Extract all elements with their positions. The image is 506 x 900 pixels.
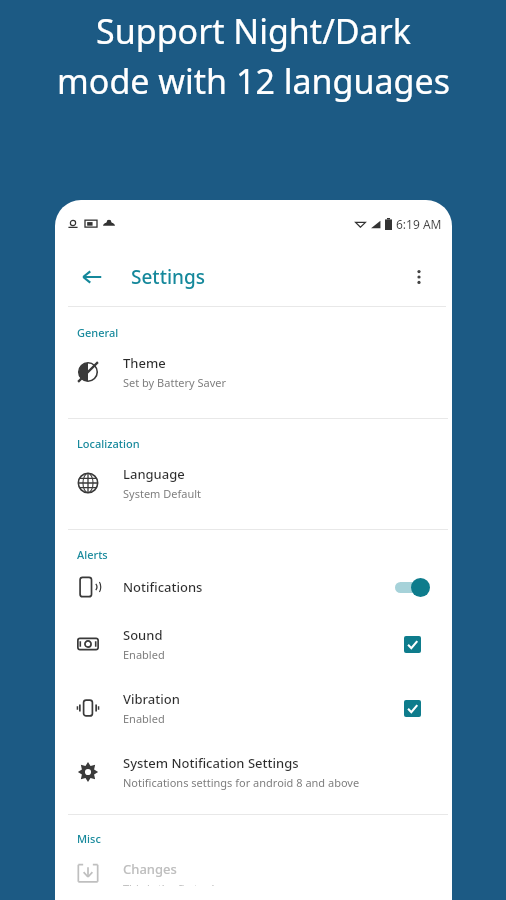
staticText: Theme — [123, 354, 166, 372]
button[interactable]: Back — [77, 262, 107, 292]
staticText: Support Night/Dark — [96, 8, 411, 54]
staticText: Misc — [77, 831, 101, 846]
staticText: Enabled — [123, 711, 165, 726]
button[interactable]: Vibration — [55, 676, 452, 740]
staticText: Settings — [131, 264, 205, 290]
button[interactable]: Notifications — [55, 562, 452, 612]
staticText: System Default — [123, 486, 202, 501]
button[interactable]: Checkbox — [401, 697, 423, 719]
button[interactable]: More options — [404, 262, 434, 292]
button[interactable]: System Notification Settings — [55, 740, 452, 804]
staticText: Set by Battery Saver — [123, 375, 227, 390]
button[interactable]: Theme — [55, 340, 452, 404]
button[interactable]: Notifications toggle — [392, 576, 432, 598]
button[interactable]: Sound — [55, 612, 452, 676]
staticText: Language — [123, 465, 185, 483]
staticText: 6:19 AM — [396, 216, 442, 232]
staticText: Vibration — [123, 690, 180, 708]
button[interactable]: Changes — [55, 846, 452, 900]
staticText: Alerts — [77, 547, 108, 562]
button[interactable]: Checkbox — [401, 633, 423, 655]
staticText: Changes — [123, 860, 177, 878]
staticText: Notifications — [123, 578, 203, 596]
button[interactable]: Language — [55, 451, 452, 515]
staticText: Localization — [77, 436, 140, 451]
staticText: Notifications settings for android 8 and… — [123, 775, 360, 790]
staticText: Sound — [123, 626, 163, 644]
staticText: Enabled — [123, 647, 165, 662]
staticText: mode with 12 languages — [57, 58, 450, 104]
staticText: System Notification Settings — [123, 754, 299, 772]
staticText: General — [77, 325, 119, 340]
staticText: This is the first release — [123, 881, 239, 886]
